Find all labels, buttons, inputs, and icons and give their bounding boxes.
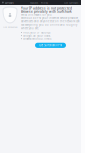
button[interactable]: Pricing [39, 1, 49, 4]
button[interactable]: Get Surfshark [64, 1, 81, 4]
button[interactable]: Features [29, 1, 39, 4]
staticText: Browse privately with Surfshark [21, 9, 72, 14]
staticText: Surfshark [5, 1, 14, 4]
staticText: Get Surfshark [64, 1, 78, 4]
button[interactable]: Get Surfshark VPN [35, 43, 66, 48]
staticText: Pricing [40, 1, 47, 4]
staticText: Your IP address is not protected [21, 6, 72, 10]
staticText: Features [30, 1, 38, 4]
staticText: Not protected [3, 25, 17, 28]
staticText: Hide your IP address [23, 31, 50, 34]
staticText: Without a VPN your internet service prov… [21, 16, 80, 30]
button[interactable]: Surfshark [0, 1, 14, 4]
staticText: Browse without limits [23, 37, 51, 40]
staticText: Get Surfshark VPN [39, 44, 62, 47]
staticText: What this means for you [21, 13, 52, 16]
staticText: Encrypt all your traffic [23, 34, 50, 37]
